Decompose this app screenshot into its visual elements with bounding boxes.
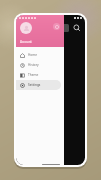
- staticText: is founded: [19, 43, 82, 47]
- staticText: ondia.: [19, 103, 82, 107]
- staticText: season: [19, 68, 82, 72]
- staticText: Schools.: [19, 113, 82, 117]
- button[interactable]: History: [16, 60, 61, 70]
- staticText: ream -: [19, 63, 82, 67]
- button[interactable]: Theme: [16, 70, 61, 80]
- staticText: o Bulls,: [19, 93, 82, 97]
- button[interactable]: [19, 24, 69, 32]
- staticText: chises of: [19, 83, 82, 87]
- staticText: Account: [20, 40, 32, 44]
- button[interactable]: Settings: [16, 80, 61, 90]
- staticText: . The NBA: [19, 78, 82, 82]
- staticText: moving: [19, 58, 82, 62]
- staticText: , Kobe: [19, 108, 82, 112]
- staticText: 30 teams,: [19, 48, 82, 52]
- staticText: ern Hear: [19, 98, 82, 102]
- button[interactable]: Profile picture: [20, 22, 32, 34]
- staticText: Settings: [28, 83, 41, 87]
- staticText: Los Angeles: [19, 88, 82, 92]
- button[interactable]: Settings: [53, 23, 60, 30]
- button[interactable]: Home: [16, 50, 61, 60]
- staticText: Theme: [28, 73, 39, 77]
- staticText: one from: [19, 53, 82, 57]
- button[interactable]: Search: [72, 23, 82, 33]
- staticText: basketball: [19, 38, 82, 42]
- staticText: History: [28, 63, 39, 67]
- staticText: s playoffs: [19, 73, 82, 77]
- staticText: Home: [28, 53, 38, 57]
